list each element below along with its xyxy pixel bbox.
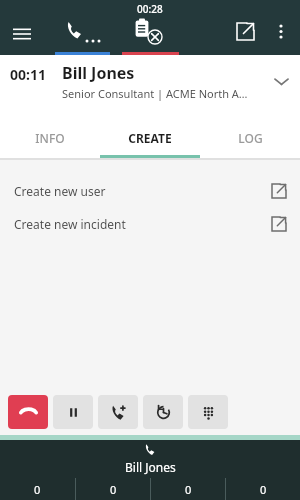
button[interactable]: Create new user bbox=[0, 174, 300, 207]
staticText: 0 bbox=[185, 482, 192, 497]
staticText: Bill Jones bbox=[125, 459, 176, 475]
button[interactable]: 0 bbox=[226, 478, 300, 500]
button[interactable]: 0 bbox=[151, 478, 225, 500]
staticText: CREATE bbox=[128, 130, 172, 146]
staticText: LOG bbox=[238, 130, 263, 146]
button[interactable]: 0 bbox=[0, 478, 75, 500]
button[interactable]: Open in new window bbox=[228, 14, 262, 48]
button[interactable]: Hold bbox=[53, 395, 93, 429]
button[interactable]: End call bbox=[8, 395, 48, 429]
staticText: Create new user bbox=[14, 183, 106, 199]
staticText: INFO bbox=[35, 130, 65, 146]
button[interactable]: INFO bbox=[0, 117, 100, 158]
button[interactable]: LOG bbox=[200, 117, 300, 158]
staticText: 00:28 bbox=[137, 2, 163, 16]
staticText: Create new incident bbox=[14, 216, 126, 232]
staticText: 0 bbox=[110, 482, 117, 497]
button[interactable]: Add call bbox=[98, 395, 138, 429]
staticText: 0 bbox=[34, 482, 41, 497]
button[interactable]: Calls bbox=[55, 14, 110, 55]
button[interactable]: CREATE bbox=[100, 117, 200, 158]
button[interactable]: More options bbox=[266, 16, 296, 46]
staticText: Bill Jones bbox=[62, 62, 135, 84]
staticText: Senior Consultant | ACME North A… bbox=[62, 86, 248, 101]
button[interactable]: Expand bbox=[267, 67, 295, 95]
button[interactable]: Menu bbox=[6, 18, 38, 50]
button[interactable]: Bill Jones bbox=[0, 440, 300, 478]
staticText: 00:11 bbox=[10, 65, 46, 84]
button[interactable]: Call history bbox=[143, 395, 183, 429]
button[interactable]: 0 bbox=[76, 478, 150, 500]
button[interactable]: Create new incident bbox=[0, 207, 300, 240]
staticText: 0 bbox=[260, 482, 267, 497]
button[interactable]: Tasks bbox=[122, 14, 179, 55]
button[interactable]: Dialpad bbox=[188, 395, 228, 429]
